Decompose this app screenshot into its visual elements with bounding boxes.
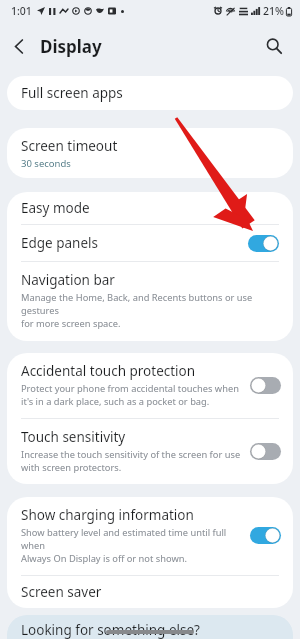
button[interactable]: Back bbox=[0, 27, 38, 65]
staticText: Screen saver bbox=[21, 583, 102, 601]
staticText: Screen timeout bbox=[21, 137, 118, 155]
button[interactable]: Switch off bbox=[250, 443, 281, 460]
staticText: Navigation bar bbox=[21, 271, 115, 289]
staticText: 1:01 bbox=[11, 4, 32, 18]
staticText: Protect your phone from accidental touch… bbox=[21, 382, 239, 408]
button[interactable]: Switch off bbox=[250, 377, 281, 394]
button[interactable]: Touch sensitivity bbox=[7, 419, 293, 484]
button[interactable]: Easy mode bbox=[7, 192, 293, 224]
staticText: Easy mode bbox=[21, 199, 90, 217]
button[interactable]: Full screen apps bbox=[7, 76, 293, 110]
button[interactable]: Show charging information bbox=[7, 497, 293, 575]
staticText: Increase the touch sensitivity of the sc… bbox=[21, 448, 241, 474]
staticText: 21% bbox=[263, 4, 284, 18]
staticText: 30 seconds bbox=[21, 157, 71, 170]
button[interactable]: Screen saver bbox=[7, 576, 293, 608]
button[interactable]: Edge panels bbox=[7, 225, 293, 261]
button[interactable]: Switch on bbox=[248, 235, 279, 252]
button[interactable]: Navigation bar bbox=[7, 262, 293, 341]
button[interactable]: Screen timeout bbox=[7, 128, 293, 178]
button[interactable]: Switch on bbox=[250, 527, 281, 544]
button[interactable]: Search bbox=[254, 26, 294, 66]
staticText: Show charging information bbox=[21, 506, 194, 524]
staticText: Show battery level and estimated time un… bbox=[21, 526, 242, 565]
button[interactable]: Looking for something else? bbox=[7, 615, 293, 639]
staticText: Looking for something else? bbox=[21, 621, 200, 639]
staticText: Touch sensitivity bbox=[21, 428, 126, 446]
staticText: Edge panels bbox=[21, 234, 248, 252]
staticText: Accidental touch protection bbox=[21, 362, 196, 380]
button[interactable]: Accidental touch protection bbox=[7, 353, 293, 418]
staticText: Full screen apps bbox=[21, 84, 123, 102]
staticText: Manage the Home, Back, and Recents butto… bbox=[21, 291, 279, 330]
staticText: Display bbox=[40, 35, 102, 58]
